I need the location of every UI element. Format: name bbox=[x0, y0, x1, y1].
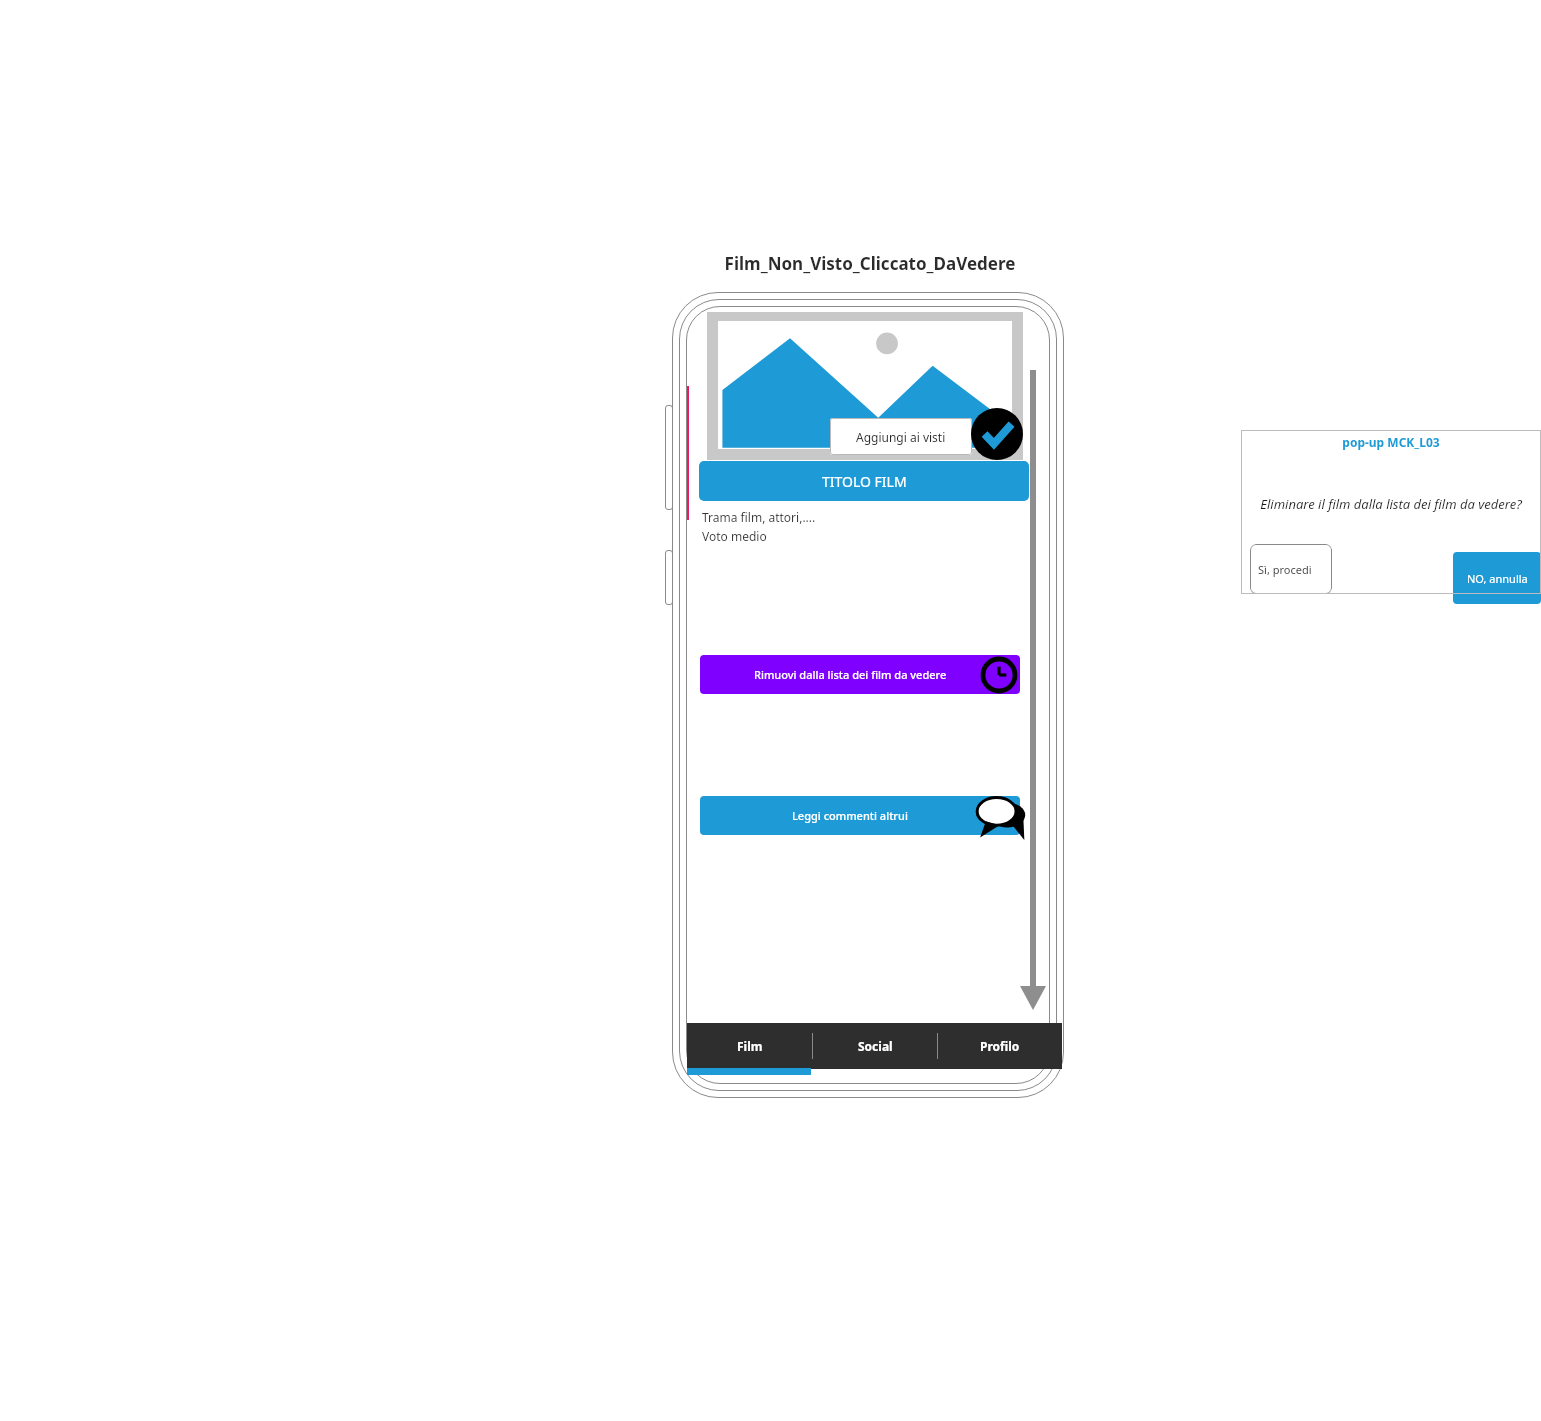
button[interactable]: Commenti bbox=[975, 793, 1029, 839]
staticText: Profilo bbox=[980, 1038, 1020, 1054]
staticText: Film bbox=[737, 1038, 763, 1054]
staticText: Sì, procedi bbox=[1258, 562, 1312, 577]
button[interactable]: Orologio bbox=[981, 657, 1017, 693]
button[interactable]: Profilo bbox=[938, 1023, 1062, 1069]
staticText: NO, annulla bbox=[1467, 571, 1528, 586]
button[interactable]: TITOLO FILM bbox=[699, 461, 1029, 501]
button[interactable]: Leggi commenti altrui bbox=[700, 796, 1020, 835]
button[interactable]: Aggiungi ai visti bbox=[830, 418, 972, 455]
button[interactable]: Social bbox=[813, 1023, 937, 1069]
staticText: Trama film, attori,.... bbox=[702, 509, 816, 525]
button[interactable]: Rimuovi dalla lista dei film da vedere bbox=[700, 655, 1020, 694]
staticText: pop-up MCK_L03 bbox=[1241, 434, 1541, 450]
staticText: Film_Non_Visto_Cliccato_DaVedere bbox=[710, 252, 1030, 275]
staticText: Leggi commenti altrui bbox=[792, 808, 908, 823]
button[interactable]: NO, annulla bbox=[1453, 552, 1541, 604]
staticText: Aggiungi ai visti bbox=[856, 429, 946, 445]
staticText: Social bbox=[858, 1038, 893, 1054]
staticText: TITOLO FILM bbox=[822, 472, 907, 491]
staticText: Rimuovi dalla lista dei film da vedere bbox=[754, 667, 947, 682]
staticText: Voto medio bbox=[702, 528, 767, 544]
button[interactable]: Aggiungi ai visti bbox=[971, 408, 1023, 460]
staticText: Eliminare il film dalla lista dei film d… bbox=[1255, 495, 1527, 513]
button[interactable]: Film bbox=[687, 1023, 812, 1069]
button[interactable]: Sì, procedi bbox=[1250, 544, 1332, 594]
